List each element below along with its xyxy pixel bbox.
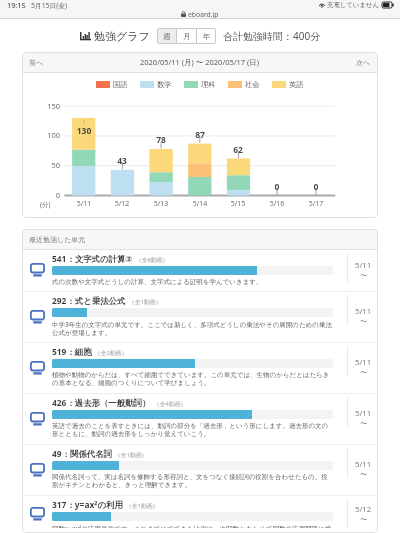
staticText: (分) [40, 200, 51, 209]
button[interactable]: 49：関係代名詞 [22, 445, 378, 495]
staticText: 49：関係代名詞 [52, 448, 112, 459]
button[interactable]: 週 [157, 28, 176, 44]
staticText: 週 [163, 32, 171, 41]
staticText: 国語 [113, 80, 128, 89]
staticText: 数学 [157, 80, 172, 89]
staticText: 中学3年生の文字式の単元です。ここでは新しく、多項式どうしの乗法やその展開のため… [52, 320, 333, 337]
staticText: 関係代名詞って、実は名詞を修飾する形容詞と、文をつなぐ接続詞の役割を合わせたもの… [52, 473, 333, 489]
staticText: 英語で過去のことを表すときには、動詞の部分を「過去形」という形にします。過去形の… [52, 422, 333, 438]
staticText: 19:15 [7, 0, 26, 10]
staticText: 5/16 [263, 199, 291, 209]
staticText: 5/12 [108, 199, 136, 209]
staticText: 年 [203, 32, 211, 41]
button[interactable]: 317：y=ax²の利用 [22, 496, 378, 533]
staticText: 最近勉強した単元 [29, 235, 86, 244]
staticText: 関数y=ax²の応用単元です。これまでにでてきた比例や一次関数とあわせて関数の応… [52, 524, 333, 528]
button[interactable]: 月 [177, 28, 196, 44]
staticText: （全2動画） [95, 349, 128, 357]
staticText: 317：y=ax²の利用 [52, 499, 123, 510]
staticText: 519：細胞 [52, 346, 92, 357]
staticText: 0 [263, 181, 291, 193]
staticText: 理科 [201, 80, 216, 89]
staticText: 5/11 [355, 260, 372, 271]
staticText: 5/15 [224, 199, 252, 209]
staticText: 150 [28, 101, 60, 111]
staticText: 0 [28, 190, 60, 200]
button[interactable]: 年 [197, 28, 216, 44]
staticText: 62 [224, 144, 252, 156]
button[interactable]: 426：過去形（一般動詞） [22, 394, 378, 444]
staticText: 0 [302, 181, 330, 193]
button[interactable]: 541：文字式の計算② [22, 250, 378, 291]
button[interactable]: 519：細胞 [22, 343, 378, 393]
staticText: 130 [70, 125, 98, 137]
staticText: 合計勉強時間：400分 [223, 29, 321, 43]
staticText: 292：式と乗法公式 [52, 295, 126, 306]
button[interactable]: 前へ [29, 58, 44, 67]
staticText: eboard.jp [188, 10, 219, 18]
staticText: （全1動画） [126, 502, 159, 510]
staticText: 78 [147, 134, 175, 146]
staticText: 541：文字式の計算② [52, 253, 133, 264]
staticText: 43 [108, 155, 136, 167]
staticText: 〜 [360, 271, 367, 280]
staticText: 5/12 [355, 504, 372, 515]
staticText: 英語 [289, 80, 304, 89]
staticText: 月 [183, 32, 191, 41]
staticText: 植物や動物のからだは、すべて細胞でできています。この単元では、生物のからだとはた… [52, 371, 333, 387]
staticText: 次へ [356, 58, 371, 67]
staticText: 5/11 [355, 408, 372, 419]
staticText: 充電していません [327, 1, 380, 9]
staticText: 87 [186, 129, 214, 141]
staticText: 426：過去形（一般動詞） [52, 397, 151, 408]
staticText: 5/14 [186, 199, 214, 209]
staticText: 50 [28, 160, 60, 170]
staticText: 〜 [360, 419, 367, 428]
staticText: （全8動画） [136, 256, 169, 264]
staticText: 5/11 [355, 306, 372, 317]
staticText: 5/11 [70, 199, 98, 209]
staticText: 5/11 [355, 459, 372, 470]
staticText: 5/11 [355, 357, 372, 368]
staticText: 前へ [29, 58, 44, 67]
staticText: 社会 [245, 80, 260, 89]
staticText: 〜 [360, 470, 367, 479]
staticText: （全4動画） [154, 400, 187, 408]
staticText: （全1動画） [115, 451, 148, 459]
staticText: 勉強グラフ [94, 29, 150, 43]
staticText: 〜 [360, 368, 367, 377]
staticText: 式の次数や文字式どうしの計算、文字式による証明を学んでいきます。 [52, 278, 263, 286]
staticText: 5/13 [147, 199, 175, 209]
staticText: 100 [28, 130, 60, 140]
staticText: 〜 [360, 317, 367, 326]
staticText: （全1動画） [129, 298, 162, 306]
staticText: 〜 [360, 515, 367, 524]
staticText: 2020/05/11 (月) 〜 2020/05/17 (日) [140, 57, 260, 67]
button[interactable]: 次へ [356, 58, 371, 67]
staticText: 5月15日(金) [31, 1, 68, 10]
staticText: 5/17 [302, 199, 330, 209]
button[interactable]: 292：式と乗法公式 [22, 292, 378, 342]
